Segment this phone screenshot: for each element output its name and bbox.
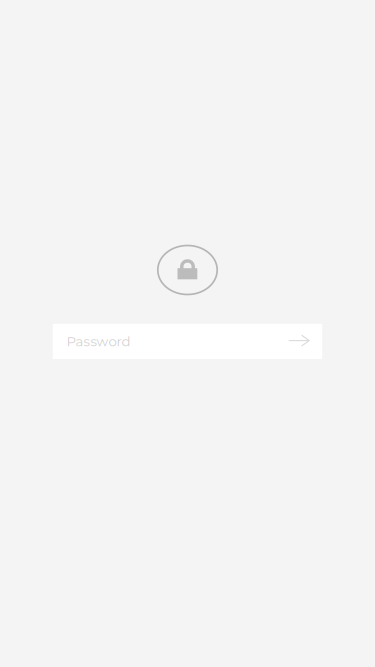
button[interactable]: Submit password [281,324,322,359]
button[interactable]: Password [53,324,281,359]
staticText: Password [66,333,130,350]
